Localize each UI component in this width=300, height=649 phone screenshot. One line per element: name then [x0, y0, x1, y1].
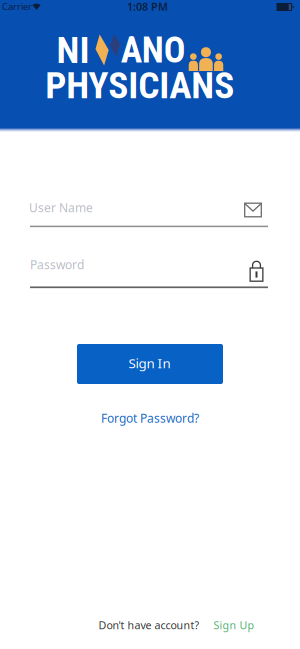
staticText: PHYSICIANS	[45, 64, 234, 107]
staticText: Sign In	[128, 354, 170, 372]
staticText: Carrier	[2, 0, 32, 13]
staticText: Don't have account?	[98, 618, 199, 632]
staticText: Forgot Password?	[101, 410, 199, 426]
staticText: Sign Up	[213, 618, 254, 632]
staticText: ANO	[121, 29, 186, 71]
staticText: 1:08 PM	[127, 0, 168, 14]
staticText: NI	[56, 28, 89, 72]
staticText: User Name	[29, 199, 93, 215]
staticText: Password	[30, 256, 84, 272]
